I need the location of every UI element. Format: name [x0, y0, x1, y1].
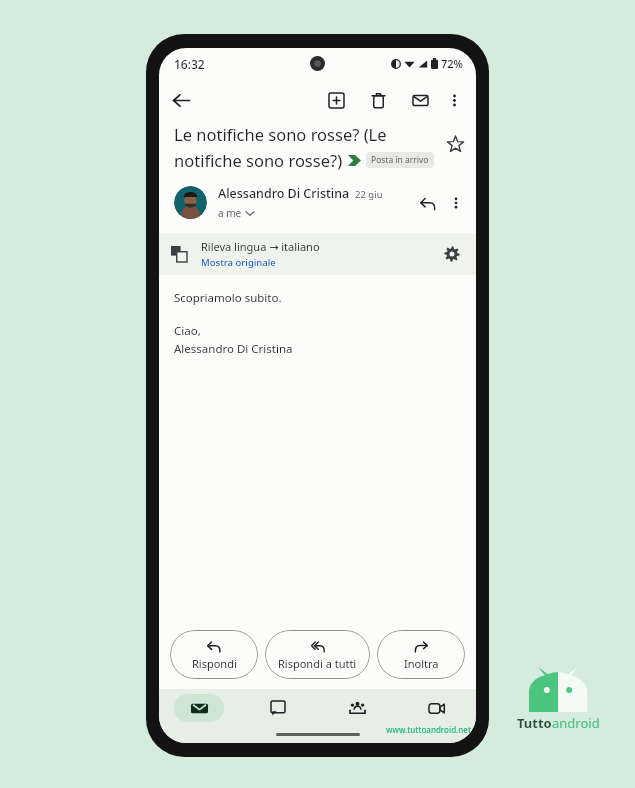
button[interactable]: Mail: [174, 694, 224, 722]
staticText: 22 giu: [355, 188, 383, 201]
staticText: Mostra originale: [201, 256, 276, 269]
button[interactable]: Rispondi: [170, 630, 258, 679]
button[interactable]: a me: [218, 206, 254, 220]
button[interactable]: More options: [437, 83, 471, 117]
staticText: android: [552, 714, 600, 732]
staticText: Alessandro Di Cristina: [174, 341, 293, 357]
staticText: Scopriamolo subito.: [174, 290, 282, 306]
button[interactable]: Posta in arrivo: [366, 152, 434, 168]
staticText: Rispondi a tutti: [278, 656, 357, 671]
button[interactable]: Spaces: [332, 694, 382, 722]
button[interactable]: Rispondi a tutti: [265, 630, 370, 679]
staticText: Ciao,: [174, 323, 201, 339]
button[interactable]: Rileva lingua → italiano: [159, 233, 476, 275]
button[interactable]: Reply: [414, 189, 442, 217]
staticText: Rileva lingua → italiano: [201, 239, 320, 254]
staticText: 72%: [441, 56, 463, 71]
button[interactable]: Chat: [253, 694, 303, 722]
staticText: a me: [218, 206, 242, 220]
button[interactable]: More options: [444, 191, 468, 215]
button[interactable]: Translation settings: [440, 242, 464, 266]
staticText: Alessandro Di Cristina: [218, 185, 350, 202]
button[interactable]: Inoltra: [377, 630, 465, 679]
staticText: Posta in arrivo: [371, 154, 429, 166]
button[interactable]: Star: [442, 131, 468, 157]
staticText: notifiche sono rosse?): [174, 149, 343, 171]
staticText: Tutto: [517, 714, 552, 732]
staticText: www.tuttoandroid.net: [386, 724, 471, 735]
button[interactable]: [174, 186, 207, 219]
button[interactable]: Archive: [319, 83, 353, 117]
button[interactable]: Delete: [361, 83, 395, 117]
button[interactable]: Mark as unread: [403, 83, 437, 117]
staticText: Le notifiche sono rosse? (Le: [174, 123, 387, 145]
staticText: Rispondi: [192, 656, 237, 671]
button[interactable]: Meet: [411, 694, 461, 722]
staticText: 16:32: [174, 56, 205, 72]
staticText: Inoltra: [404, 656, 439, 671]
button[interactable]: Back: [164, 83, 198, 117]
